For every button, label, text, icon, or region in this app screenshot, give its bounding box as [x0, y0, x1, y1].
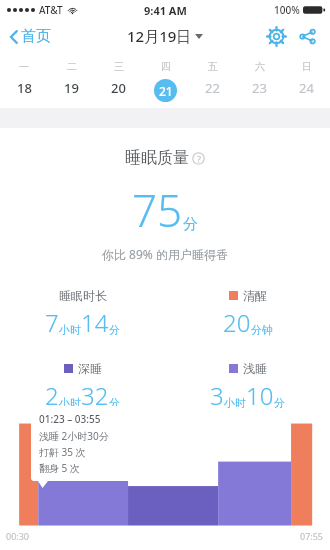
- staticText: 分: [109, 323, 120, 337]
- staticText: 睡眠时长: [59, 288, 107, 303]
- staticText: 六: [255, 60, 265, 73]
- staticText: 清醒: [243, 288, 267, 303]
- staticText: 二: [67, 60, 77, 73]
- button[interactable]: 23: [236, 79, 283, 97]
- button[interactable]: 睡眠时长: [0, 286, 165, 341]
- staticText: 小时: [224, 396, 246, 410]
- staticText: 五: [208, 60, 218, 73]
- staticText: 浅睡: [243, 361, 267, 376]
- staticText: 21: [159, 83, 173, 99]
- staticText: 翻身 5 次: [39, 461, 80, 475]
- staticText: 四: [161, 60, 171, 73]
- staticText: 3: [210, 379, 224, 412]
- staticText: 20: [111, 79, 126, 97]
- button[interactable]: 12月19日: [119, 22, 211, 50]
- staticText: 分: [274, 396, 285, 410]
- staticText: 浅睡 2小时30分: [39, 429, 109, 443]
- staticText: 一: [19, 60, 29, 73]
- button[interactable]: 22: [189, 79, 236, 97]
- staticText: AT&T: [39, 3, 63, 17]
- button[interactable]: 清醒: [165, 286, 330, 341]
- button[interactable]: 深睡: [0, 359, 165, 414]
- staticText: 7: [45, 306, 59, 339]
- staticText: 日: [302, 60, 312, 73]
- staticText: 75: [132, 180, 183, 240]
- staticText: 你比 89% 的用户睡得香: [102, 246, 228, 262]
- staticText: 100%: [274, 3, 300, 17]
- staticText: 9:41 AM: [144, 3, 187, 18]
- staticText: 2: [45, 379, 59, 412]
- staticText: 深睡: [78, 361, 102, 376]
- staticText: 12月19日: [127, 26, 192, 46]
- staticText: 14: [81, 306, 109, 339]
- staticText: 32: [81, 379, 109, 412]
- button[interactable]: 18: [0, 79, 48, 97]
- staticText: 三: [114, 60, 124, 73]
- button[interactable]: Share: [295, 24, 320, 49]
- button[interactable]: 浅睡: [165, 359, 330, 414]
- staticText: 23: [252, 79, 267, 97]
- staticText: 10: [246, 379, 274, 412]
- button[interactable]: 首页: [0, 23, 59, 50]
- staticText: 24: [299, 79, 314, 97]
- staticText: 18: [17, 79, 32, 97]
- staticText: 打鼾 35 次: [39, 445, 86, 459]
- button[interactable]: 24: [283, 79, 330, 97]
- staticText: 20: [223, 306, 251, 339]
- staticText: 00:30: [6, 530, 30, 542]
- button[interactable]: Settings: [264, 24, 289, 49]
- staticText: 分: [109, 396, 120, 410]
- button[interactable]: 19: [48, 79, 95, 97]
- button[interactable]: 21: [142, 79, 189, 102]
- staticText: 首页: [21, 27, 51, 46]
- staticText: 22: [205, 79, 220, 97]
- staticText: 小时: [59, 396, 81, 410]
- staticText: 07:55: [300, 530, 324, 542]
- staticText: 分钟: [251, 323, 273, 337]
- staticText: 睡眠质量: [125, 148, 189, 168]
- button[interactable]: Help: [192, 152, 205, 165]
- staticText: 分: [183, 215, 198, 234]
- button[interactable]: 20: [95, 79, 142, 97]
- staticText: 小时: [59, 323, 81, 337]
- staticText: ?: [197, 153, 201, 165]
- staticText: 01:23 – 03:55: [39, 412, 101, 426]
- staticText: 19: [64, 79, 79, 97]
